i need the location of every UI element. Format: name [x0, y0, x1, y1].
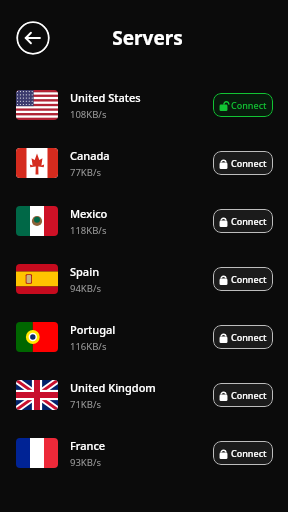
staticText: Connect	[231, 157, 267, 169]
staticText: France	[70, 438, 106, 453]
button[interactable]: United States	[0, 76, 288, 134]
staticText: 94KB/s	[70, 282, 102, 295]
button[interactable]: Connect	[213, 325, 273, 349]
button[interactable]: Connect	[213, 151, 273, 175]
staticText: Connect	[231, 447, 267, 459]
staticText: Mexico	[70, 206, 108, 221]
button[interactable]: Back	[16, 21, 50, 55]
button[interactable]: Connect	[213, 209, 273, 233]
button[interactable]: France	[0, 424, 288, 482]
staticText: 116KB/s	[70, 340, 107, 353]
staticText: United Kingdom	[70, 380, 156, 395]
staticText: Portugal	[70, 322, 116, 337]
staticText: Connect	[231, 331, 267, 343]
button[interactable]: Connect	[213, 93, 273, 117]
staticText: 71KB/s	[70, 398, 102, 411]
staticText: Servers	[112, 25, 183, 51]
staticText: Connect	[231, 99, 267, 111]
button[interactable]: Mexico	[0, 192, 288, 250]
staticText: Connect	[231, 389, 267, 401]
staticText: 108KB/s	[70, 108, 107, 121]
button[interactable]: Connect	[213, 383, 273, 407]
staticText: 118KB/s	[70, 224, 107, 237]
staticText: United States	[70, 90, 141, 105]
staticText: Spain	[70, 264, 100, 279]
button[interactable]: United Kingdom	[0, 366, 288, 424]
button[interactable]: Connect	[213, 267, 273, 291]
button[interactable]: Portugal	[0, 308, 288, 366]
button[interactable]: Connect	[213, 441, 273, 465]
staticText: Connect	[231, 273, 267, 285]
staticText: 77KB/s	[70, 166, 102, 179]
button[interactable]: Spain	[0, 250, 288, 308]
staticText: 93KB/s	[70, 456, 102, 469]
button[interactable]: Canada	[0, 134, 288, 192]
staticText: Canada	[70, 148, 110, 163]
staticText: Connect	[231, 215, 267, 227]
